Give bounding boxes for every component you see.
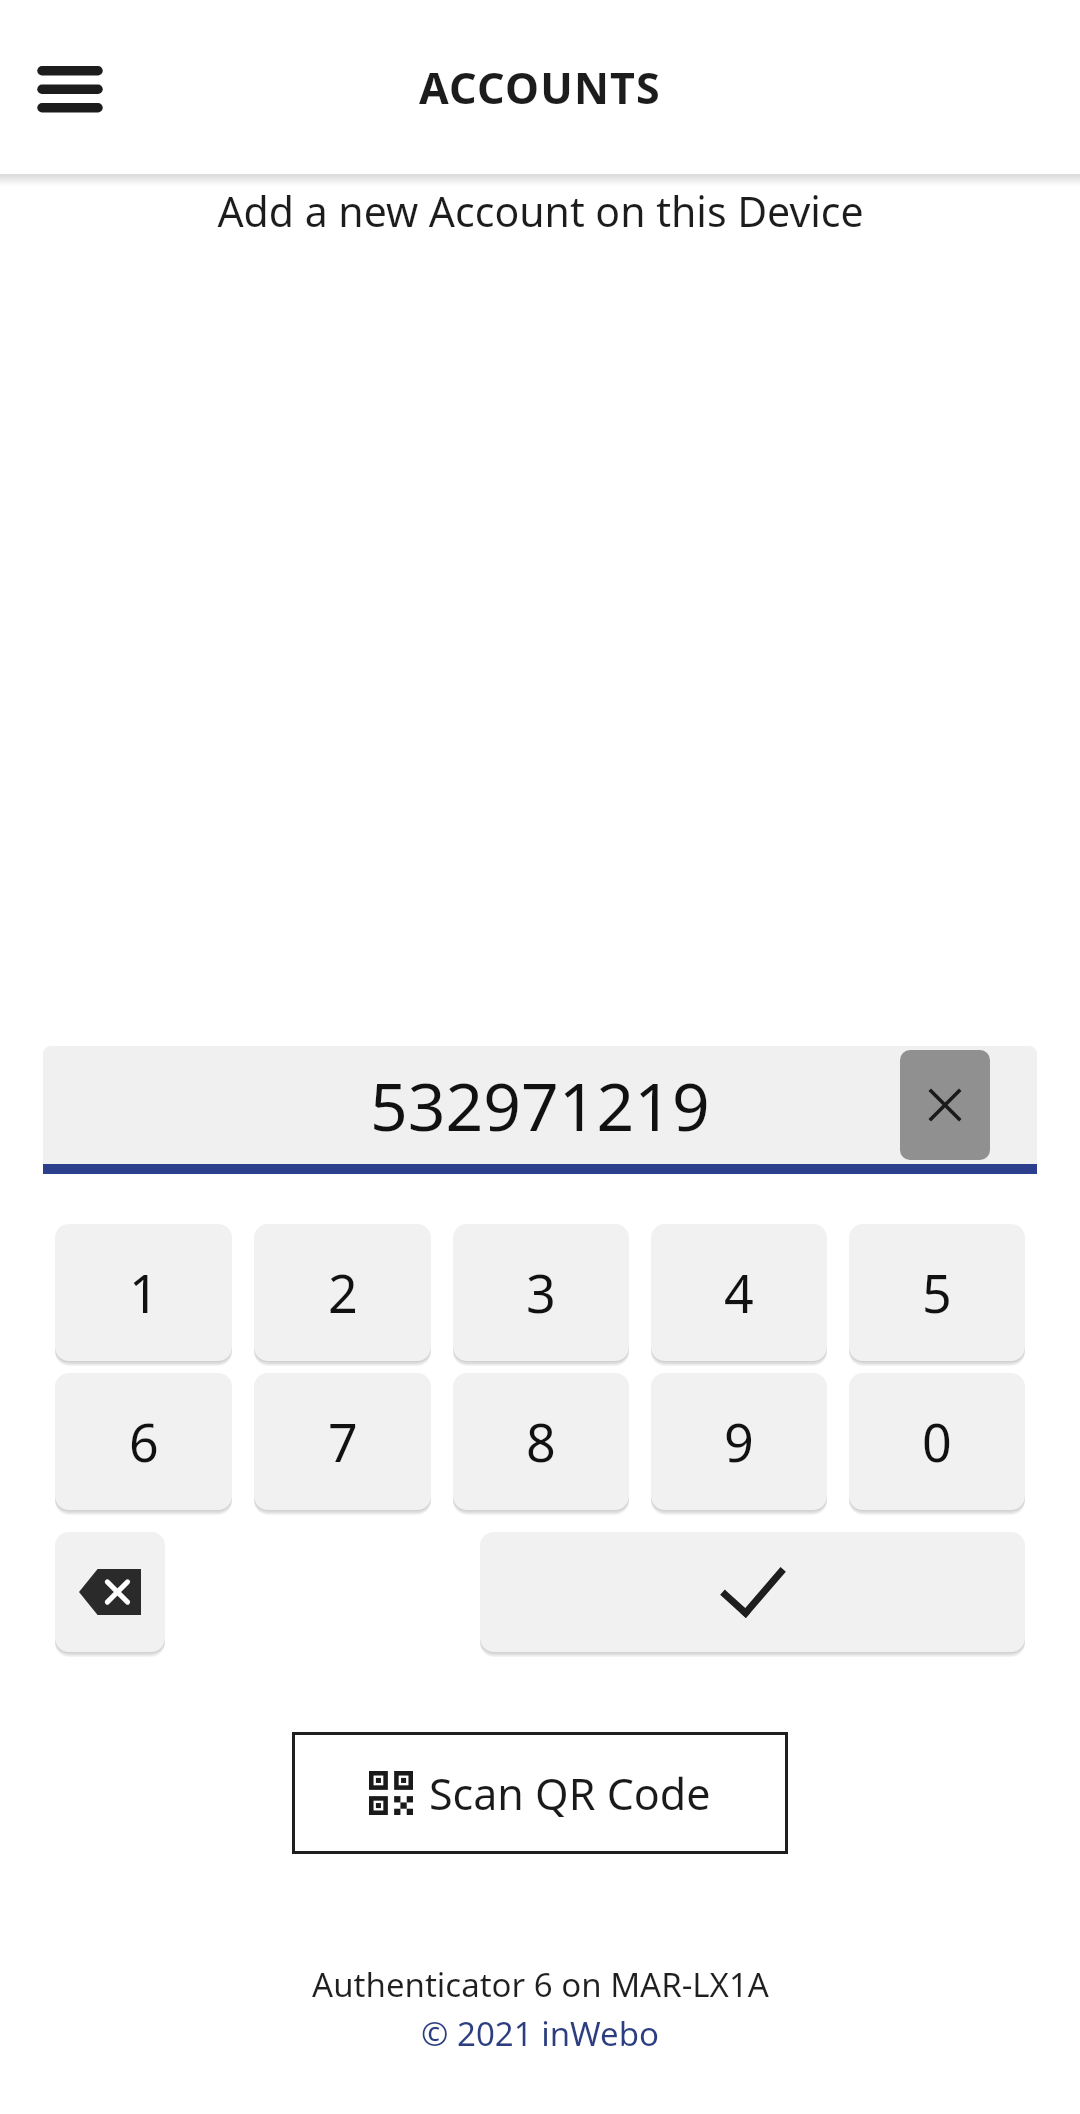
button[interactable]: 0 <box>849 1373 1025 1510</box>
other: Validate code <box>480 1532 1025 1652</box>
button[interactable]: 8 <box>453 1373 629 1510</box>
button[interactable]: 532971219 <box>43 1046 1037 1164</box>
staticText: Authenticator 6 on MAR-LX1A <box>312 1962 769 2007</box>
staticText: ACCOUNTS <box>419 58 661 117</box>
other: Backspace <box>55 1532 165 1652</box>
button[interactable]: Open navigation menu <box>28 45 112 129</box>
staticText: 4 <box>724 1257 754 1328</box>
staticText: 7 <box>328 1406 358 1477</box>
staticText: 3 <box>526 1257 556 1328</box>
staticText: 1 <box>129 1257 159 1328</box>
button[interactable]: 5 <box>849 1224 1025 1361</box>
button[interactable]: 1 <box>55 1224 232 1361</box>
button[interactable]: 3 <box>453 1224 629 1361</box>
button[interactable] <box>480 1532 1025 1652</box>
button[interactable]: Clear code <box>900 1050 990 1160</box>
staticText: Add a new Account on this Device <box>217 183 864 239</box>
button[interactable]: 9 <box>651 1373 827 1510</box>
staticText: 9 <box>724 1406 754 1477</box>
button[interactable]: 2 <box>254 1224 431 1361</box>
staticText: © 2021 inWebo <box>421 2011 659 2056</box>
button[interactable] <box>55 1532 165 1652</box>
button[interactable]: 6 <box>55 1373 232 1510</box>
staticText: 6 <box>129 1406 159 1477</box>
staticText: Scan QR Code <box>429 1764 711 1823</box>
staticText: 5 <box>922 1257 952 1328</box>
staticText: 532971219 <box>370 1060 710 1150</box>
button[interactable]: © 2021 inWebo <box>421 2011 659 2056</box>
staticText: 8 <box>526 1406 556 1477</box>
staticText: 2 <box>328 1257 358 1328</box>
button[interactable]: Scan QR Code <box>292 1732 788 1854</box>
button[interactable]: 4 <box>651 1224 827 1361</box>
staticText: 0 <box>922 1406 952 1477</box>
button[interactable]: 7 <box>254 1373 431 1510</box>
